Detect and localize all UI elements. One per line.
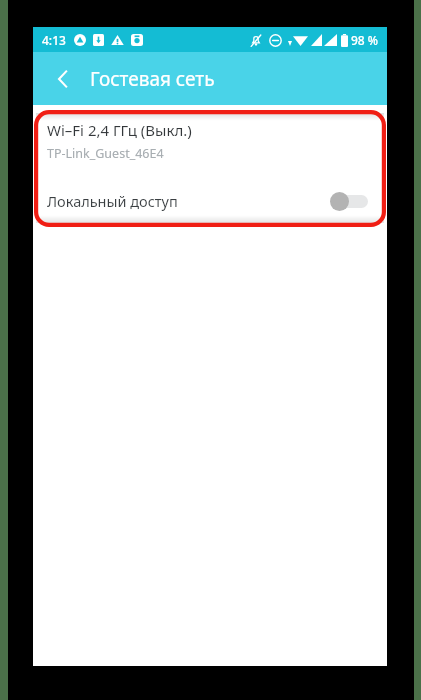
staticText: 98 % xyxy=(351,32,379,48)
staticText: Гостевая сеть xyxy=(90,66,215,92)
button[interactable] xyxy=(330,191,368,211)
button[interactable]: Локальный доступ xyxy=(36,184,384,218)
button[interactable]: Back xyxy=(41,57,85,101)
staticText: Wi–Fi 2,4 ГГц (Выкл.) xyxy=(47,120,192,140)
button[interactable]: Wi–Fi 2,4 ГГц (Выкл.) xyxy=(36,113,384,223)
staticText: 4:13 xyxy=(42,32,66,48)
staticText: Локальный доступ xyxy=(47,191,330,211)
staticText: TP-Link_Guest_46E4 xyxy=(47,145,164,162)
